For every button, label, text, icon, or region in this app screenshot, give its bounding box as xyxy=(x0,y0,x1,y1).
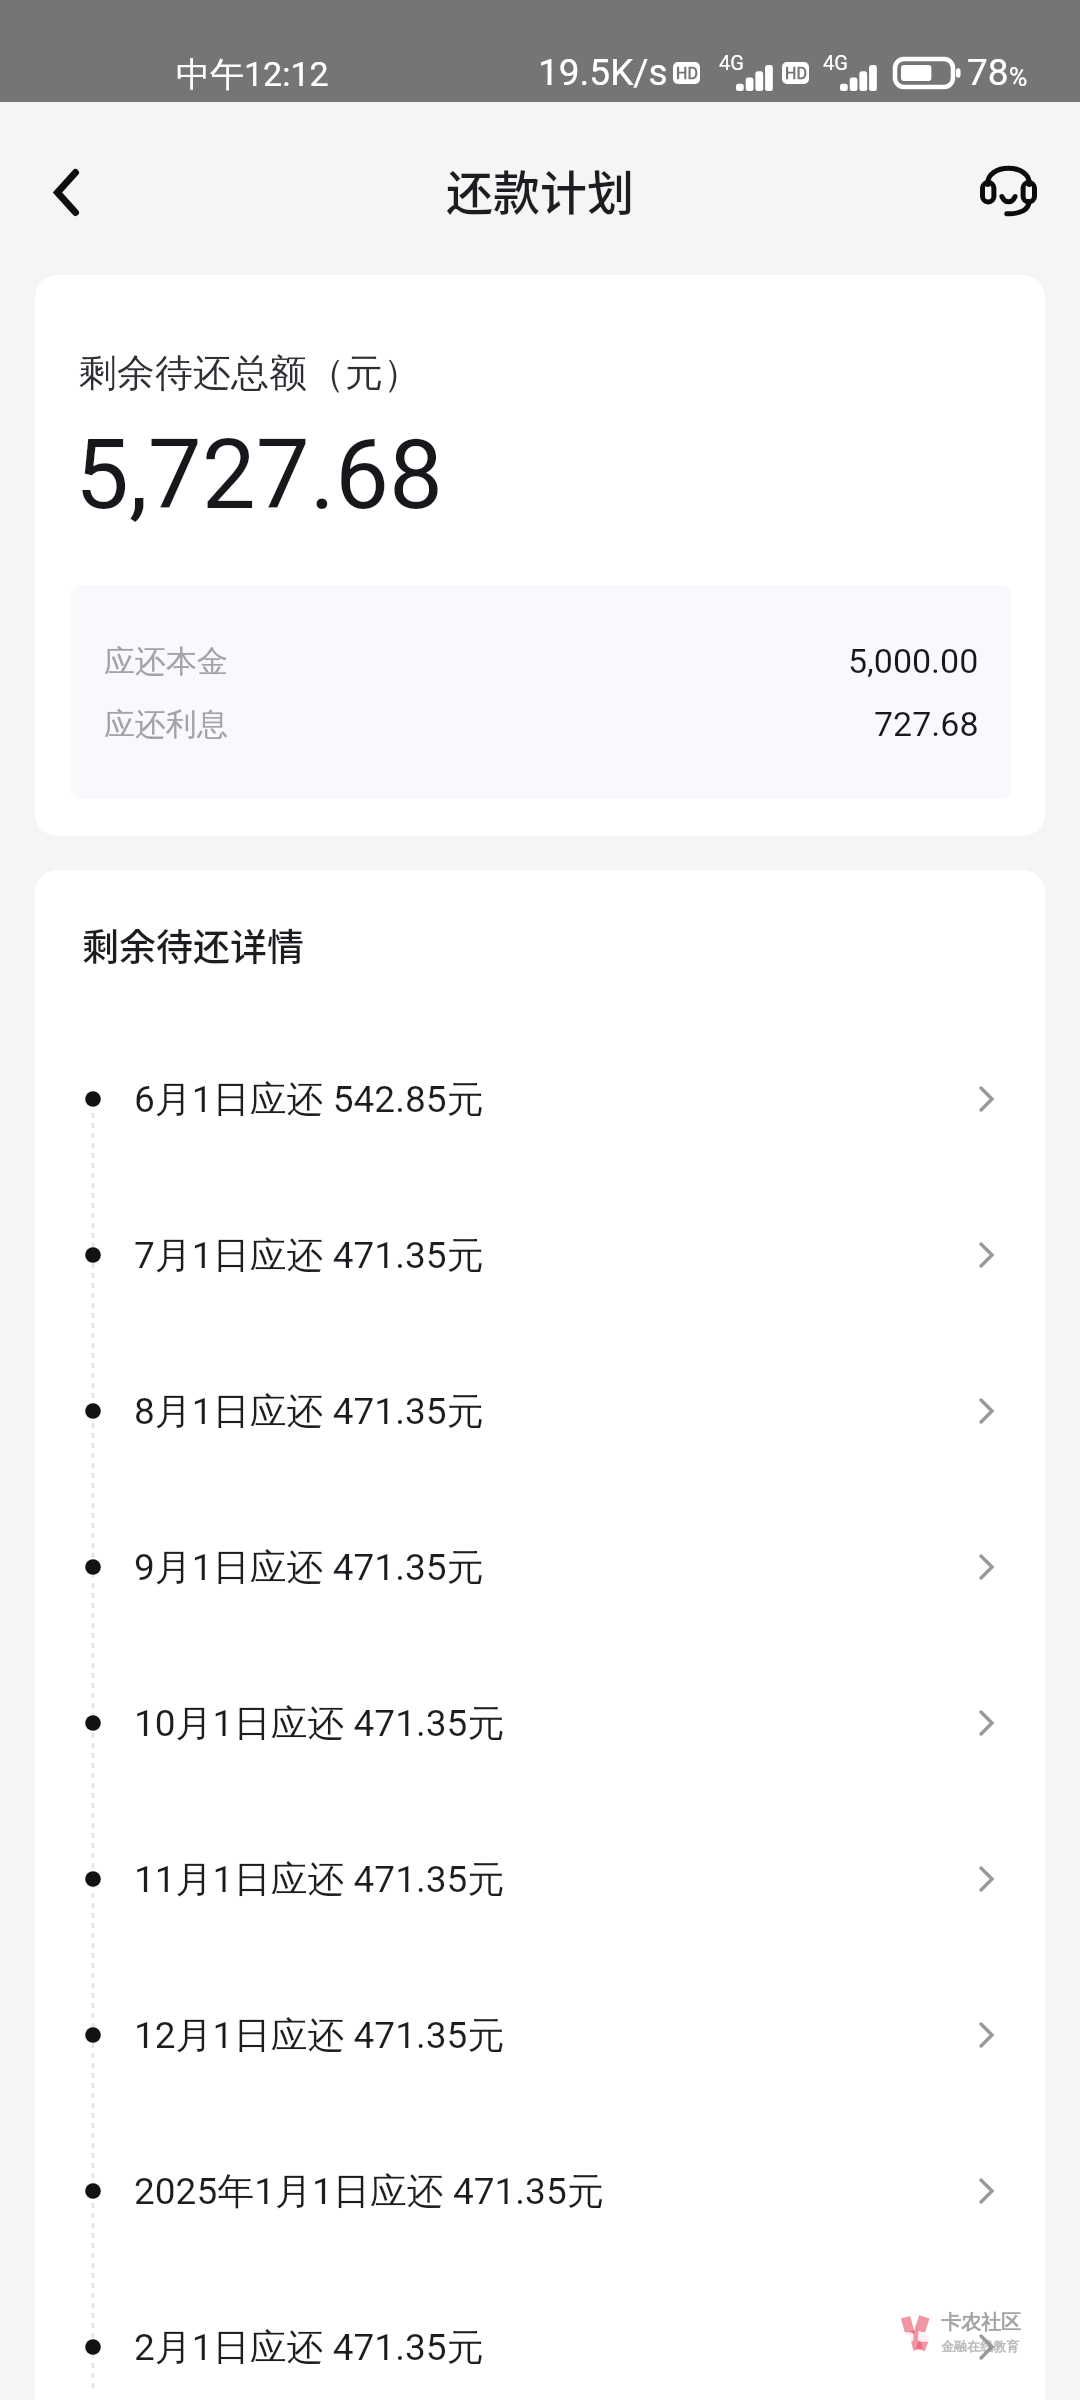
staticText: % xyxy=(1009,63,1028,92)
staticText: 7月1日应还 471.35元 xyxy=(134,1232,979,1279)
button[interactable]: 6月1日应还 542.85元 xyxy=(35,1021,1045,1177)
button[interactable]: 2月1日应还 471.35元 xyxy=(35,2269,1045,2400)
staticText: 应还利息 xyxy=(104,705,228,744)
staticText: 4G xyxy=(719,51,744,74)
staticText: 应还本金 xyxy=(104,642,228,681)
staticText: 727.68 xyxy=(874,704,979,744)
staticText: 5,000.00 xyxy=(848,641,979,681)
staticText: 4G xyxy=(823,51,848,74)
button[interactable]: Customer service xyxy=(966,147,1050,231)
staticText: 5,727.68 xyxy=(75,419,443,532)
staticText: 6月1日应还 542.85元 xyxy=(134,1076,979,1123)
staticText: 剩余待还总额（元） xyxy=(79,349,421,397)
button[interactable]: 7月1日应还 471.35元 xyxy=(35,1177,1045,1333)
staticText: 9月1日应还 471.35元 xyxy=(134,1544,979,1591)
button[interactable]: 12月1日应还 471.35元 xyxy=(35,1957,1045,2113)
button[interactable]: 9月1日应还 471.35元 xyxy=(35,1489,1045,1645)
staticText: 金融在线教育 xyxy=(941,2338,1019,2354)
staticText: 2025年1月1日应还 471.35元 xyxy=(134,2168,979,2215)
staticText: 还款计划 xyxy=(446,155,634,223)
staticText: 中午12:12 xyxy=(176,53,329,96)
staticText: 卡农社区 xyxy=(941,2310,1021,2335)
button[interactable]: 8月1日应还 471.35元 xyxy=(35,1333,1045,1489)
staticText: 78 xyxy=(967,51,1009,94)
staticText: 19.5K/s xyxy=(538,51,668,94)
staticText: 2月1日应还 471.35元 xyxy=(134,2324,979,2371)
staticText: 剩余待还详情 xyxy=(82,918,304,972)
staticText: HD xyxy=(676,64,698,83)
staticText: HD xyxy=(785,64,807,83)
staticText: 10月1日应还 471.35元 xyxy=(134,1700,979,1747)
button[interactable]: 11月1日应还 471.35元 xyxy=(35,1801,1045,1957)
staticText: 11月1日应还 471.35元 xyxy=(134,1856,979,1903)
button[interactable]: Back xyxy=(24,147,108,231)
button[interactable]: 2025年1月1日应还 471.35元 xyxy=(35,2113,1045,2269)
staticText: 12月1日应还 471.35元 xyxy=(134,2012,979,2059)
staticText: 8月1日应还 471.35元 xyxy=(134,1388,979,1435)
button[interactable]: 10月1日应还 471.35元 xyxy=(35,1645,1045,1801)
